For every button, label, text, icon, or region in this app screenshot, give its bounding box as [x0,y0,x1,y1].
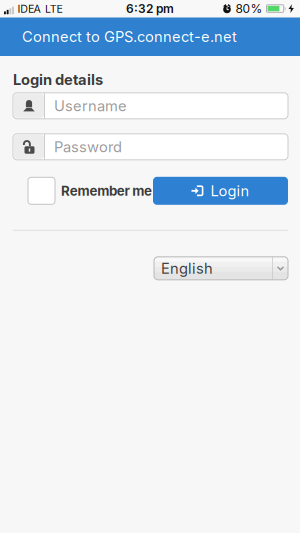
staticText: English [161,260,213,277]
staticText: Password [54,138,122,155]
staticText: IDEA [17,2,41,15]
staticText: 80% [235,2,262,16]
button[interactable]: Language: English [154,257,288,280]
button[interactable]: Login [153,177,288,205]
staticText: Login details [13,71,103,88]
staticText: Connect to GPS.connect-e.net [22,28,237,45]
staticText: LTE [45,2,62,15]
staticText: Username [54,97,127,114]
staticText: Remember me [61,183,152,199]
button[interactable]: Password [13,134,288,160]
staticText: 6:32 pm [126,2,174,16]
button[interactable]: Remember me [28,177,55,204]
button[interactable]: Username [13,93,288,119]
staticText: Login [210,182,249,199]
